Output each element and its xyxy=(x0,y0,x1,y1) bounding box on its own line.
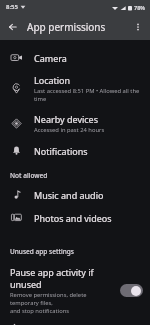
staticText: Location xyxy=(34,74,71,86)
button[interactable]: Photos and videos xyxy=(0,206,150,229)
button[interactable]: Notifications xyxy=(0,139,150,162)
staticText: Last accessed 8:51 PM • Allowed all the … xyxy=(34,87,142,103)
staticText: Camera xyxy=(34,52,67,64)
staticText: Nearby devices xyxy=(34,113,98,125)
button[interactable]: Camera xyxy=(0,46,150,69)
staticText: Unused app settings xyxy=(10,247,74,256)
staticText: Accessed in past 24 hours xyxy=(34,126,105,134)
staticText: Remove permissions, delete temporary fil… xyxy=(10,291,114,315)
button[interactable]: More options xyxy=(128,17,148,37)
staticText: Photos and videos xyxy=(34,212,112,224)
staticText: Pause app activity if unused xyxy=(10,266,114,290)
button[interactable]: Nearby devices xyxy=(0,108,150,139)
staticText: Music and audio xyxy=(34,189,104,201)
staticText: 78% xyxy=(134,4,145,11)
button[interactable]: Back xyxy=(3,17,23,37)
button[interactable]: Pause app activity if unused toggle xyxy=(120,284,143,297)
button[interactable]: Music and audio xyxy=(0,183,150,206)
staticText: App permissions xyxy=(27,20,106,34)
button[interactable]: Location xyxy=(0,69,150,108)
staticText: Notifications xyxy=(34,145,88,157)
staticText: 8:55 xyxy=(6,3,18,11)
staticText: Not allowed xyxy=(10,171,48,180)
button[interactable]: Pause app activity if unused xyxy=(0,263,150,318)
